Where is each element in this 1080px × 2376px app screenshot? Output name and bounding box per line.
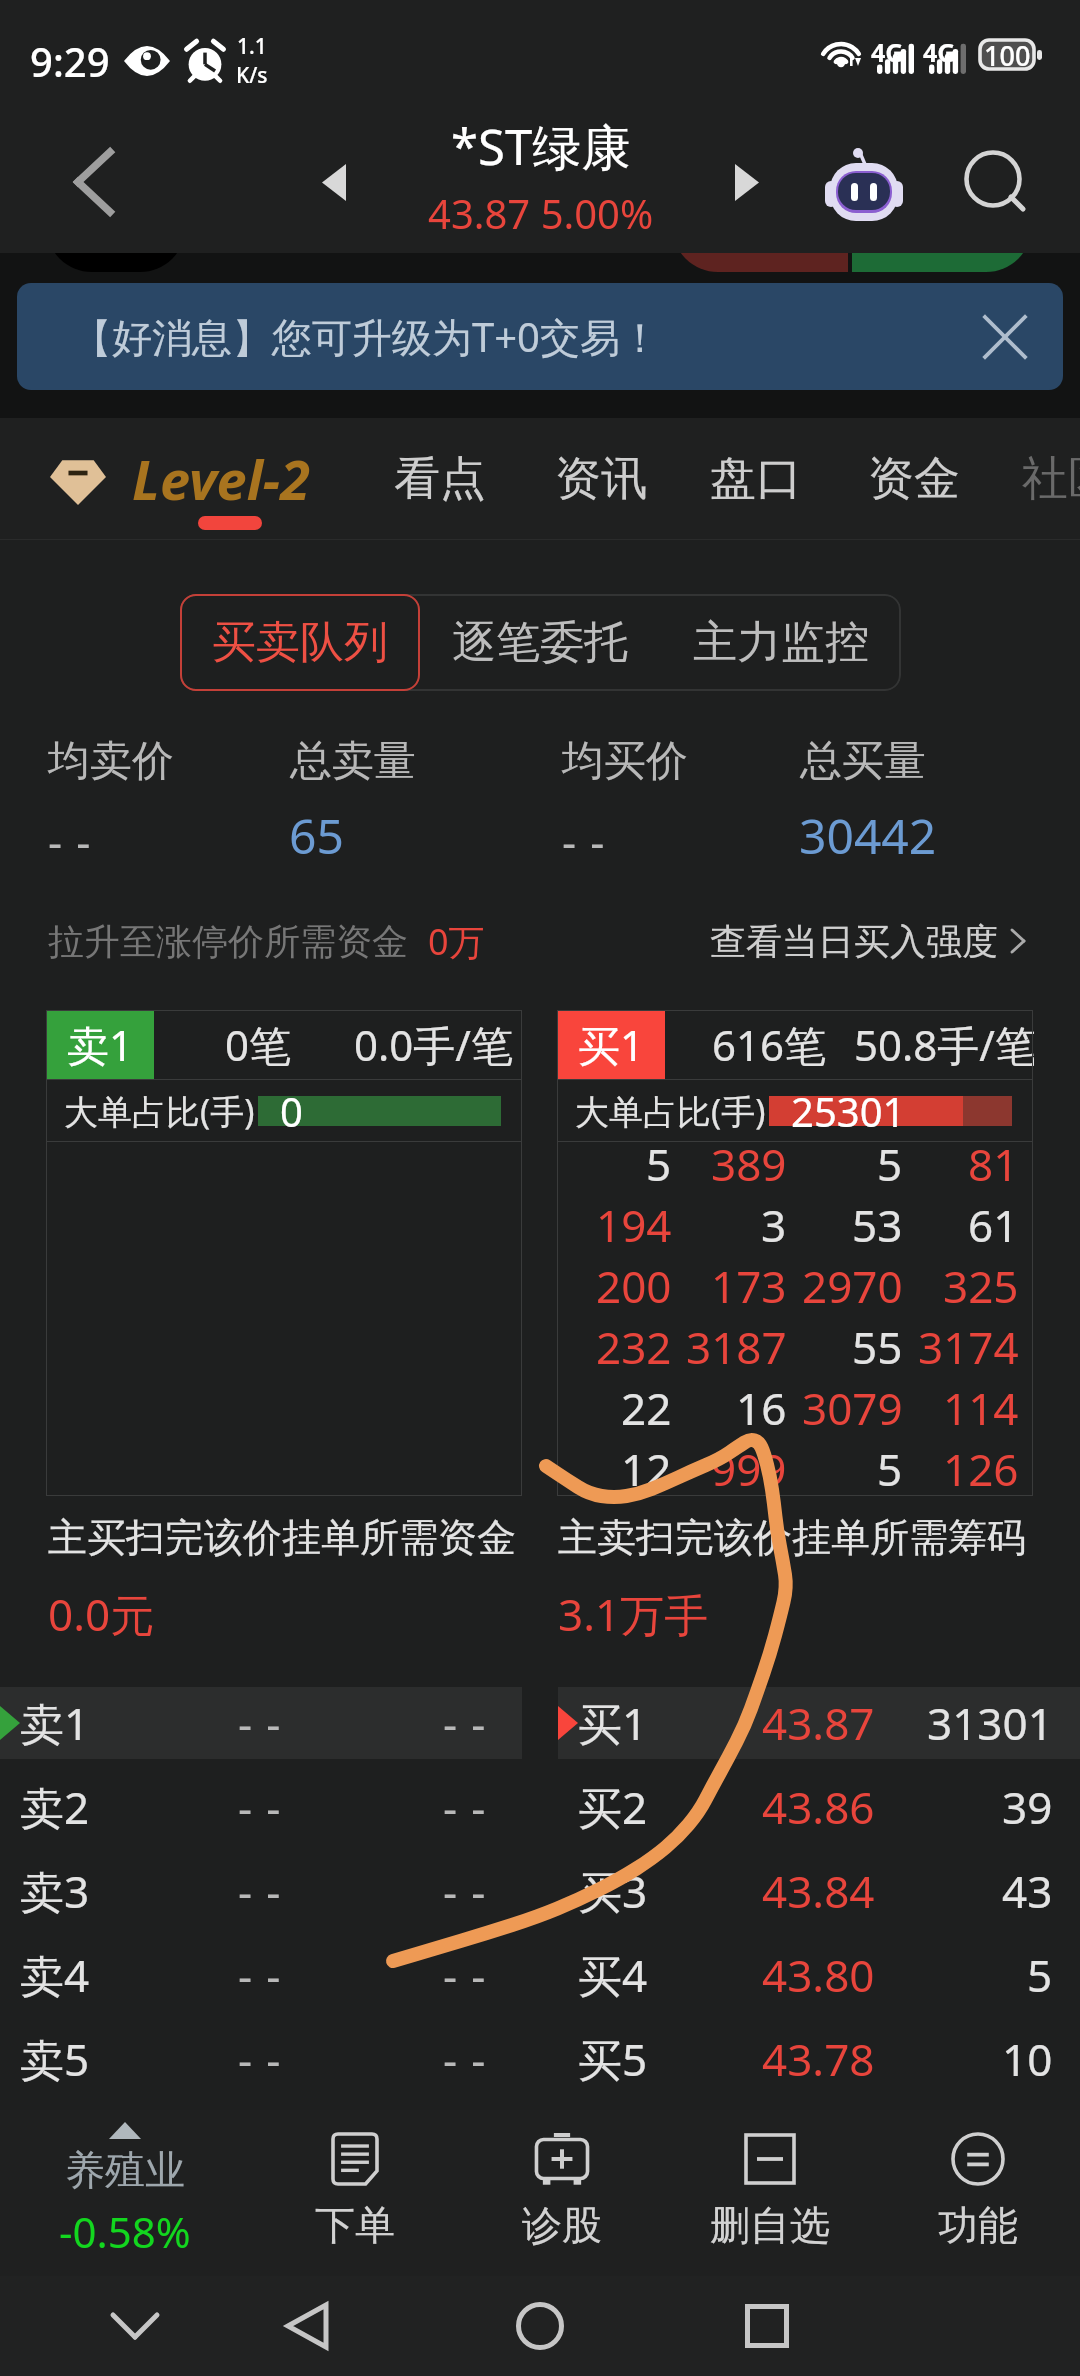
staticText: 232 — [596, 1317, 672, 1370]
button[interactable]: 养殖业 — [22, 2122, 228, 2260]
staticText: 5 — [1027, 1945, 1053, 2005]
staticText: -- — [238, 1861, 295, 1921]
button[interactable]: 盘口 — [710, 418, 802, 540]
staticText: 50.8手/笔 — [854, 1016, 1034, 1073]
button[interactable]: 卖1 — [0, 1687, 522, 1759]
staticText: 资讯 — [555, 450, 647, 508]
button[interactable]: Close banner — [967, 299, 1043, 375]
staticText: 5 — [877, 1134, 903, 1187]
button[interactable]: Home — [485, 2276, 595, 2376]
staticText: 43 — [1002, 1861, 1053, 1921]
staticText: 194 — [596, 1195, 672, 1248]
staticText: 31301 — [927, 1693, 1053, 1753]
button[interactable]: 买1 — [558, 1687, 1080, 1759]
staticText: -- — [443, 2029, 500, 2089]
staticText: 53 — [852, 1195, 903, 1248]
staticText: 买3 — [578, 1861, 648, 1921]
button[interactable]: 卖1 — [46, 1010, 522, 1496]
staticText: 卖5 — [20, 2029, 90, 2089]
button[interactable]: 社区 — [1022, 418, 1080, 540]
button[interactable]: 卖2 — [0, 1771, 522, 1843]
staticText: 大单占比(手) — [575, 1088, 766, 1134]
button[interactable] — [852, 180, 1032, 272]
button[interactable]: Back — [29, 119, 159, 245]
staticText: 卖4 — [20, 1945, 90, 2005]
button[interactable]: 买1 — [557, 1010, 1033, 1496]
button[interactable]: 【好消息】您可升级为T+0交易！ — [17, 283, 1063, 390]
staticText: 0 — [280, 1084, 303, 1138]
button[interactable]: 逐笔委托 — [420, 594, 660, 691]
button[interactable]: 资讯 — [555, 418, 647, 540]
button[interactable]: 查看当日买入强度 — [710, 905, 1026, 977]
staticText: 3079 — [802, 1378, 903, 1431]
button[interactable]: 卖4 — [0, 1939, 522, 2011]
staticText: 大单占比(手) — [64, 1088, 255, 1134]
staticText: 盘口 — [710, 450, 802, 508]
staticText: 43.80 — [762, 1945, 875, 2005]
staticText: 30442 — [799, 803, 937, 868]
staticText: *ST绿康 — [451, 113, 631, 180]
button[interactable]: 看点 — [394, 418, 486, 540]
staticText: 4G — [923, 35, 956, 69]
staticText: 卖3 — [20, 1861, 90, 1921]
button[interactable]: *ST绿康 — [400, 113, 681, 239]
button[interactable]: Search — [930, 119, 1060, 245]
button[interactable]: 卖3 — [0, 1855, 522, 1927]
staticText: 65 — [289, 803, 344, 868]
button[interactable]: 功能 — [876, 2130, 1080, 2250]
button[interactable]: Hide keyboard — [80, 2276, 190, 2376]
button[interactable]: 买卖队列 — [180, 594, 420, 691]
staticText: 126 — [943, 1439, 1019, 1492]
button[interactable]: Recent apps — [712, 2276, 822, 2376]
button[interactable]: 主买扫完该价挂单所需资金 — [48, 1513, 516, 1644]
staticText: -- — [238, 1945, 295, 2005]
button[interactable]: 主力监控 — [660, 594, 901, 691]
staticText: 25301 — [791, 1084, 906, 1138]
button[interactable]: AI assistant — [799, 119, 929, 245]
staticText: 下单 — [315, 2200, 395, 2250]
staticText: 3 — [761, 1195, 787, 1248]
button[interactable]: Level-2 — [50, 418, 311, 540]
button[interactable]: Back — [252, 2276, 362, 2376]
button[interactable]: 诊股 — [460, 2130, 664, 2250]
button[interactable]: 下单 — [253, 2130, 457, 2250]
staticText: 0.0元 — [48, 1584, 155, 1644]
staticText: 10 — [1002, 2029, 1053, 2089]
staticText: 总买量 — [800, 735, 926, 788]
staticText: -- — [238, 1777, 295, 1837]
staticText: 卖1 — [67, 1016, 134, 1073]
button[interactable]: Chart — [46, 180, 186, 272]
staticText: 养殖业 — [65, 2145, 185, 2195]
button[interactable]: Next stock — [682, 119, 812, 245]
staticText: 4G — [871, 35, 904, 69]
button[interactable]: 买5 — [558, 2023, 1080, 2095]
staticText: 买卖队列 — [212, 615, 388, 670]
staticText: 功能 — [938, 2200, 1018, 2250]
staticText: 3.1万手 — [558, 1584, 709, 1644]
staticText: 总卖量 — [290, 735, 416, 788]
staticText: 5 — [877, 1439, 903, 1492]
staticText: 资金 — [868, 450, 960, 508]
staticText: 999 — [711, 1439, 787, 1492]
button[interactable]: 买2 — [558, 1771, 1080, 1843]
button[interactable]: 买3 — [558, 1855, 1080, 1927]
staticText: 主买扫完该价挂单所需资金 — [48, 1513, 516, 1562]
staticText: 均买价 — [562, 735, 688, 788]
staticText: 12 — [621, 1439, 672, 1492]
button[interactable]: 删自选 — [668, 2130, 872, 2250]
staticText: 主卖扫完该价挂单所需筹码 — [558, 1513, 1026, 1562]
button[interactable]: 主卖扫完该价挂单所需筹码 — [558, 1513, 1026, 1644]
button[interactable]: Previous stock — [269, 119, 399, 245]
button[interactable]: 买4 — [558, 1939, 1080, 2011]
staticText: K/s — [236, 61, 268, 90]
button[interactable]: 资金 — [868, 418, 960, 540]
button[interactable] — [672, 180, 848, 272]
staticText: 173 — [711, 1256, 787, 1309]
staticText: 43.84 — [762, 1861, 875, 1921]
staticText: 39 — [1002, 1777, 1053, 1837]
staticText: 43.87 5.00% — [428, 186, 654, 239]
staticText: 卖2 — [20, 1777, 90, 1837]
staticText: 社区 — [1022, 450, 1080, 508]
button[interactable]: 卖5 — [0, 2023, 522, 2095]
staticText: 2970 — [802, 1256, 903, 1309]
